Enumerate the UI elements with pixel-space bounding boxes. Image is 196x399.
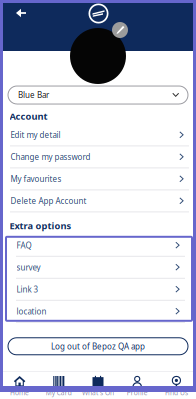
button[interactable]: survey: [6, 257, 192, 279]
staticText: My favourites: [10, 174, 61, 184]
staticText: Edit my detail: [10, 130, 60, 140]
button[interactable]: Edit my detail: [0, 124, 196, 146]
staticText: Delete App Account: [10, 196, 86, 206]
button[interactable]: location: [6, 301, 192, 323]
button[interactable]: Edit profile photo: [69, 22, 139, 84]
button[interactable]: Delete App Account: [0, 190, 196, 212]
button[interactable]: Profile: [118, 371, 157, 399]
staticText: Change my password: [10, 152, 90, 162]
staticText: Find Us: [165, 388, 188, 397]
button[interactable]: Change my password: [0, 146, 196, 168]
staticText: Link 3: [16, 284, 38, 295]
button[interactable]: Link 3: [6, 279, 192, 301]
staticText: location: [16, 306, 46, 317]
staticText: Account: [9, 110, 47, 122]
button[interactable]: Find Us: [157, 371, 196, 399]
staticText: Log out of Bepoz QA app: [51, 341, 145, 352]
button[interactable]: Home: [0, 371, 39, 399]
staticText: What's On: [82, 388, 114, 397]
button[interactable]: My Card: [39, 371, 78, 399]
button[interactable]: Log out of Bepoz QA app: [8, 338, 188, 355]
staticText: FAQ: [16, 240, 31, 251]
button[interactable]: What's On: [78, 371, 118, 399]
staticText: Extra options: [9, 219, 71, 232]
staticText: Blue Bar: [18, 90, 49, 100]
staticText: Profile: [127, 388, 148, 397]
staticText: Home: [10, 388, 29, 397]
button[interactable]: My favourites: [0, 168, 196, 190]
button[interactable]: Back: [11, 5, 31, 21]
staticText: survey: [16, 262, 40, 273]
button[interactable]: FAQ: [6, 235, 192, 257]
staticText: My Card: [46, 388, 72, 397]
